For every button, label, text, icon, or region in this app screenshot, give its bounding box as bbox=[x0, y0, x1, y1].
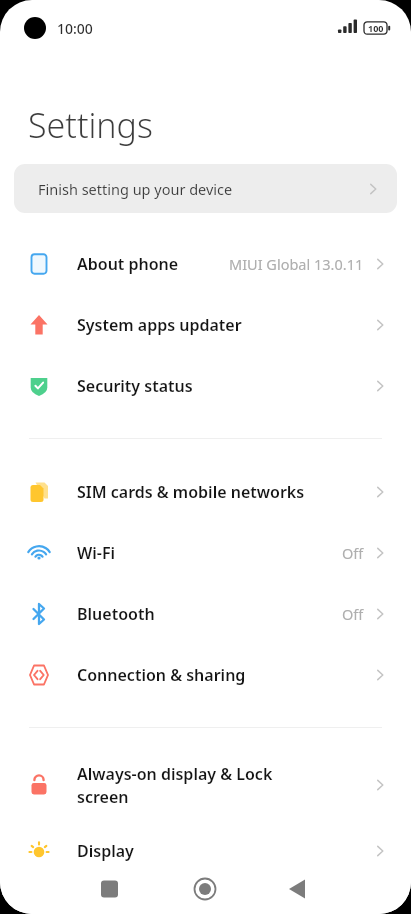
button[interactable]: Connection & sharing bbox=[0, 644, 411, 705]
button[interactable]: Always-on display & Lock screen bbox=[0, 750, 411, 820]
button[interactable]: Wi-Fi bbox=[0, 522, 411, 583]
button[interactable]: About phone bbox=[0, 233, 411, 294]
staticText: Always-on display & Lock screen bbox=[77, 763, 273, 808]
staticText: Finish setting up your device bbox=[38, 179, 233, 199]
staticText: MIUI Global 13.0.11 bbox=[229, 254, 364, 274]
button[interactable]: Security status bbox=[0, 355, 411, 416]
staticText: System apps updater bbox=[77, 314, 242, 336]
staticText: Connection & sharing bbox=[77, 664, 246, 686]
staticText: Wi-Fi bbox=[77, 542, 116, 564]
staticText: Off bbox=[342, 543, 364, 563]
staticText: Settings bbox=[28, 102, 153, 148]
staticText: Security status bbox=[77, 375, 193, 397]
button[interactable]: Display bbox=[0, 820, 411, 881]
staticText: Bluetooth bbox=[77, 603, 155, 625]
button[interactable]: Finish setting up your device bbox=[14, 164, 397, 213]
button[interactable]: Bluetooth bbox=[0, 583, 411, 644]
button[interactable]: Home bbox=[182, 868, 230, 914]
staticText: SIM cards & mobile networks bbox=[77, 481, 305, 503]
staticText: Off bbox=[342, 604, 364, 624]
button[interactable]: Recents bbox=[85, 868, 133, 914]
staticText: 10:00 bbox=[57, 19, 93, 38]
button[interactable]: System apps updater bbox=[0, 294, 411, 355]
button[interactable]: Back bbox=[284, 868, 332, 914]
staticText: About phone bbox=[77, 253, 179, 275]
staticText: Display bbox=[77, 840, 134, 862]
button[interactable]: SIM cards & mobile networks bbox=[0, 461, 411, 522]
staticText: 100 bbox=[368, 22, 384, 34]
